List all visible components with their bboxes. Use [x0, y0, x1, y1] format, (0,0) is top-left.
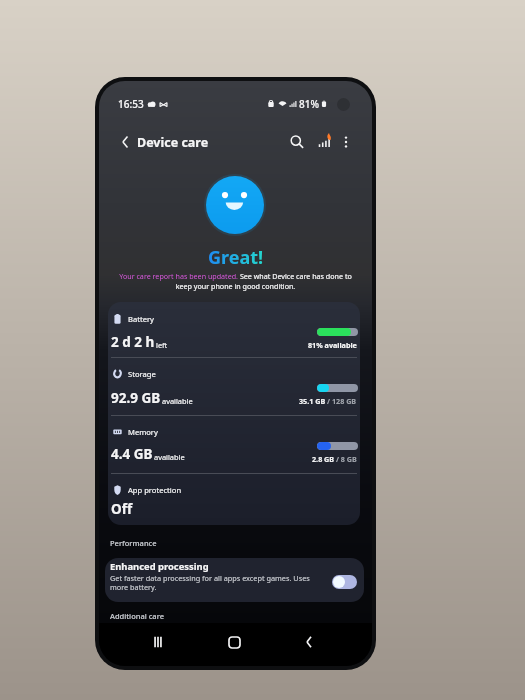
button[interactable]: App protection [108, 474, 360, 525]
staticText: Great! [208, 245, 264, 270]
staticText: available [154, 452, 185, 462]
staticText: Memory [128, 427, 158, 437]
staticText: 2 d 2 h [111, 333, 155, 351]
staticText: available [162, 396, 193, 406]
staticText: Battery [128, 314, 154, 324]
button[interactable]: Navigate up [113, 131, 135, 153]
button[interactable]: Performance report [312, 130, 336, 154]
staticText: Device care [137, 134, 209, 151]
staticText: 81% [299, 97, 319, 111]
staticText: 4.4 GB [111, 445, 153, 463]
button[interactable]: Recent apps [141, 625, 175, 659]
button[interactable]: Storage [108, 358, 360, 415]
staticText: Your care report has been updated. See w… [111, 271, 360, 291]
staticText: 92.9 GB [111, 389, 161, 407]
staticText: Additional care [110, 611, 164, 621]
staticText: 81% available [308, 340, 357, 350]
button[interactable]: Back [291, 625, 325, 659]
button[interactable]: Home [217, 625, 251, 659]
staticText: 2.8 GB / 8 GB [312, 454, 357, 464]
staticText: 16:53 [118, 97, 144, 111]
button[interactable]: Memory [108, 416, 360, 473]
staticText: Performance [110, 538, 157, 548]
button[interactable]: Search [285, 130, 309, 154]
button[interactable]: Battery [108, 302, 360, 357]
staticText: Storage [128, 369, 156, 379]
staticText: 35.1 GB / 128 GB [299, 396, 357, 406]
staticText: Off [111, 500, 133, 518]
staticText: App protection [128, 485, 182, 495]
staticText: Enhanced processing [110, 560, 209, 573]
button[interactable]: More options [334, 130, 358, 154]
button[interactable]: Enhanced processing [105, 558, 364, 602]
staticText: left [156, 340, 168, 350]
staticText: Get faster data processing for all apps … [110, 573, 310, 592]
